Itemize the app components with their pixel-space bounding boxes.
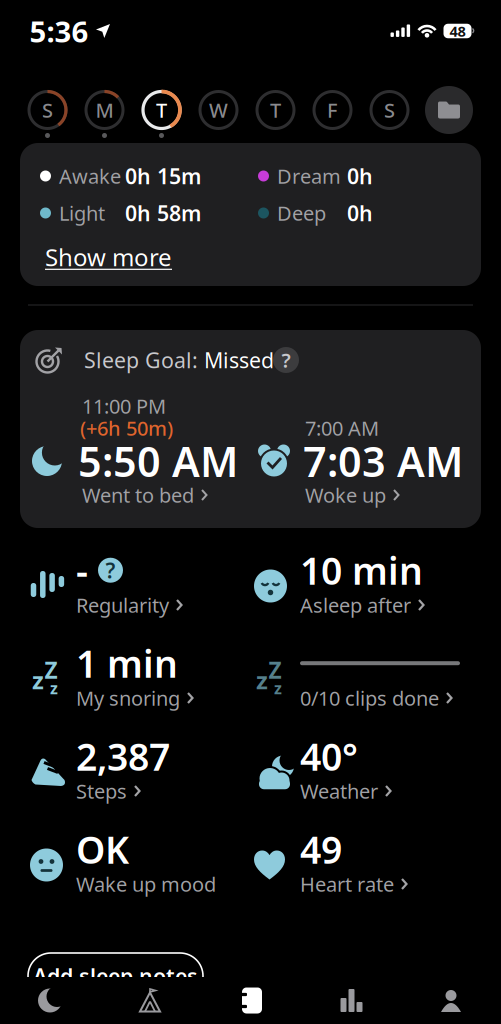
staticText: 11:00 PM	[82, 393, 166, 419]
staticText: 0h	[347, 199, 373, 227]
staticText: OK	[76, 824, 129, 874]
staticText: 0/10 clips done	[300, 685, 439, 711]
button[interactable]	[301, 977, 401, 1024]
staticText: Sleep Goal:	[84, 346, 204, 374]
staticText: 5:36	[29, 11, 88, 50]
button[interactable]: OK	[30, 833, 254, 897]
staticText: M	[95, 97, 113, 123]
staticText: 7:00 AM	[305, 415, 379, 441]
button[interactable]: 49	[254, 833, 471, 897]
staticText: Add sleep notes	[33, 962, 198, 990]
staticText: W	[209, 97, 228, 123]
staticText: z	[32, 664, 44, 696]
button[interactable]: 2,387	[30, 740, 254, 804]
staticText: 48	[449, 21, 465, 41]
staticText: z	[256, 664, 268, 696]
staticText: Light	[59, 200, 105, 226]
staticText: Went to bed	[82, 482, 194, 508]
button[interactable]: z	[30, 647, 254, 711]
staticText: 5:50 AM	[78, 434, 238, 488]
staticText: S	[384, 97, 395, 123]
staticText: S	[42, 97, 53, 123]
button[interactable]	[100, 977, 200, 1024]
staticText: z	[50, 677, 58, 699]
button[interactable]	[0, 977, 100, 1024]
staticText: ?	[105, 556, 115, 584]
staticText: 0h	[347, 162, 373, 190]
button[interactable]: Add sleep notes	[28, 953, 203, 999]
button[interactable]: S	[368, 88, 411, 131]
staticText: Regularity	[76, 592, 169, 618]
staticText: 1 min	[76, 638, 178, 688]
button[interactable]: 10 min	[254, 554, 471, 618]
staticText: ?	[281, 347, 290, 373]
staticText: Deep	[277, 200, 326, 226]
staticText: Dream	[277, 163, 341, 189]
button[interactable]: ?	[273, 347, 299, 373]
button[interactable]: Show more	[45, 241, 172, 273]
staticText: F	[327, 97, 338, 123]
staticText: Show more	[45, 241, 172, 273]
staticText: Awake	[59, 163, 121, 189]
button[interactable]	[200, 977, 301, 1024]
button[interactable]: z	[254, 647, 471, 711]
staticText: 49	[300, 824, 342, 874]
button[interactable]: W	[197, 88, 240, 131]
staticText: 0h 15m	[125, 162, 201, 190]
staticText: (+6h 50m)	[80, 415, 173, 441]
staticText: 0h 58m	[125, 199, 201, 227]
staticText: Wake up mood	[76, 871, 216, 897]
staticText: Asleep after	[300, 592, 411, 618]
staticText: 7:03 AM	[303, 434, 463, 488]
staticText: Weather	[300, 778, 378, 804]
staticText: z	[274, 677, 282, 699]
button[interactable]: T	[254, 88, 297, 131]
staticText: 40°	[300, 731, 358, 781]
staticText: Missed	[204, 346, 274, 374]
staticText: -	[76, 545, 88, 595]
button[interactable]: Went to bed	[82, 482, 208, 508]
staticText: 10 min	[300, 545, 423, 595]
staticText: Woke up	[305, 482, 386, 508]
button[interactable]: M	[83, 88, 126, 131]
button[interactable]: 40°	[254, 740, 471, 804]
button[interactable]: -	[30, 554, 254, 618]
staticText: T	[270, 97, 281, 123]
staticText: 2,387	[76, 731, 170, 781]
staticText: T	[156, 97, 167, 123]
button[interactable]	[401, 977, 501, 1024]
staticText: My snoring	[76, 685, 180, 711]
staticText: Heart rate	[300, 871, 394, 897]
staticText: Z	[44, 655, 57, 685]
button[interactable]	[425, 86, 473, 134]
button[interactable]: T	[140, 88, 183, 131]
staticText: Z	[268, 655, 281, 685]
button[interactable]: Woke up	[305, 482, 400, 508]
staticText: Steps	[76, 778, 127, 804]
button[interactable]: F	[311, 88, 354, 131]
button[interactable]: S	[26, 88, 69, 131]
